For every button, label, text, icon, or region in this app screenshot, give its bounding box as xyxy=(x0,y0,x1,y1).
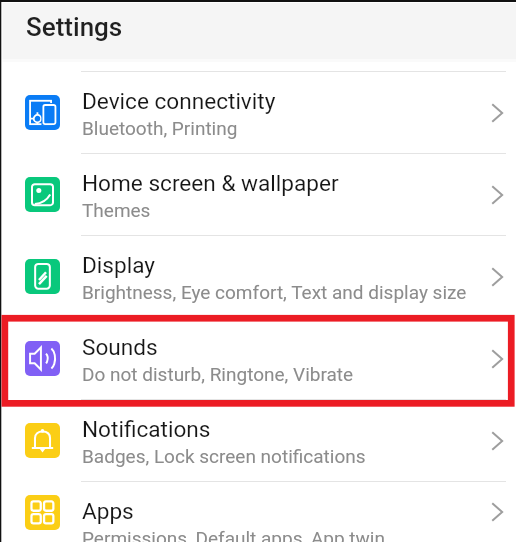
staticText: Apps xyxy=(82,498,134,524)
staticText: Bluetooth, Printing xyxy=(82,117,238,139)
staticText: Brightness, Eye comfort, Text and displa… xyxy=(82,281,467,303)
staticText: Themes xyxy=(82,199,151,221)
button[interactable]: Sounds xyxy=(0,318,516,399)
button[interactable]: Device connectivity xyxy=(0,72,516,153)
staticText: Display xyxy=(82,252,155,278)
staticText: Permissions, Default apps, App twin xyxy=(82,527,385,542)
staticText: Home screen & wallpaper xyxy=(82,170,339,196)
button[interactable]: Apps xyxy=(0,482,516,542)
staticText: Settings xyxy=(26,12,123,42)
button[interactable]: Home screen & wallpaper xyxy=(0,154,516,235)
staticText: Sounds xyxy=(82,334,158,360)
button[interactable]: Notifications xyxy=(0,400,516,481)
staticText: Do not disturb, Ringtone, Vibrate xyxy=(82,363,354,385)
staticText: Notifications xyxy=(82,416,211,442)
staticText: Badges, Lock screen notifications xyxy=(82,445,366,467)
staticText: Device connectivity xyxy=(82,88,276,114)
button[interactable]: Display xyxy=(0,236,516,317)
